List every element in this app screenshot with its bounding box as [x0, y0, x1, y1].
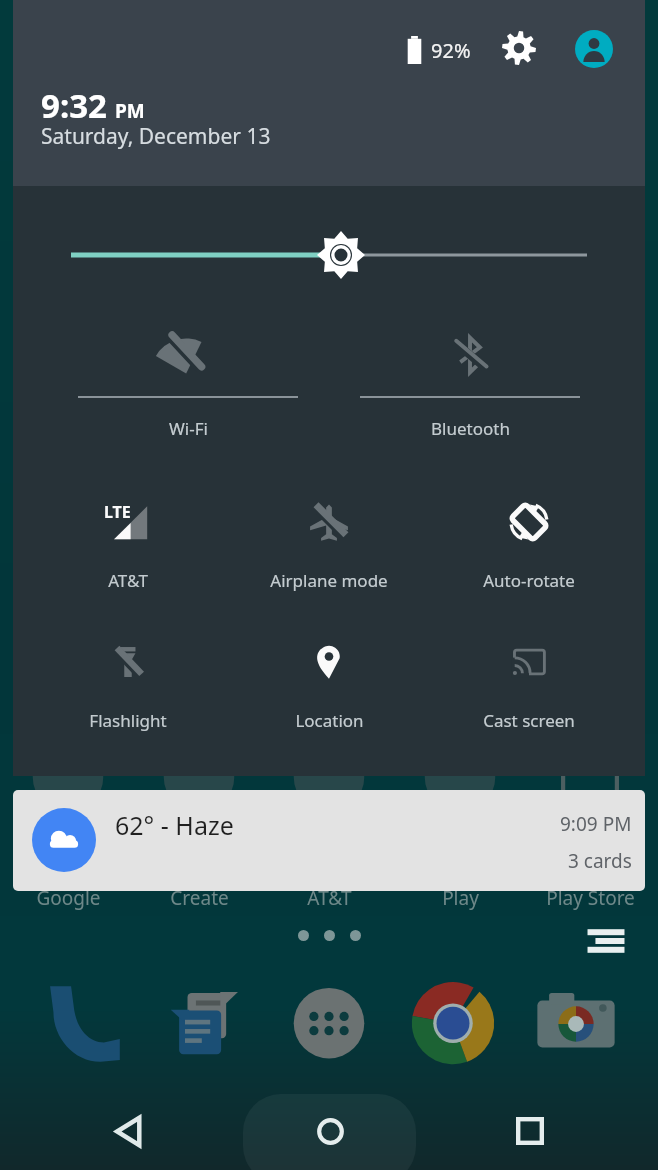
staticText: Airplane mode — [270, 569, 388, 592]
staticText: Cast screen — [483, 709, 575, 732]
staticText: Create — [170, 885, 229, 911]
button[interactable]: Settings — [492, 21, 546, 75]
staticText: Auto-rotate — [483, 569, 575, 592]
button[interactable]: Home — [300, 1101, 360, 1161]
staticText: Google — [36, 885, 101, 911]
button[interactable]: Bluetooth — [328, 318, 612, 449]
staticText: AT&T — [307, 885, 352, 911]
button[interactable]: Back — [98, 1101, 158, 1161]
staticText: 3 cards — [568, 848, 632, 874]
staticText: 9:09 PM — [560, 811, 632, 837]
button[interactable]: Location — [229, 626, 429, 741]
staticText: 92% — [431, 37, 471, 64]
staticText: 9:32 — [41, 83, 107, 128]
button[interactable]: Recent apps — [500, 1101, 560, 1161]
button[interactable]: Wi-Fi — [46, 318, 330, 449]
staticText: PM — [115, 98, 145, 124]
staticText: Saturday, December 13 — [41, 122, 271, 151]
button[interactable]: Cast screen — [429, 626, 629, 741]
button[interactable]: Auto-rotate — [429, 486, 629, 601]
button[interactable]: LTE — [28, 486, 228, 601]
staticText: 62° - Haze — [115, 808, 234, 842]
button[interactable]: User profile — [566, 21, 622, 77]
staticText: Play Store — [546, 885, 635, 911]
staticText: Location — [295, 709, 364, 732]
staticText: LTE — [104, 501, 131, 523]
button[interactable]: Flashlight — [28, 626, 228, 741]
button[interactable]: 62° - Haze — [13, 790, 645, 891]
button[interactable]: Airplane mode — [229, 486, 429, 601]
staticText: Bluetooth — [431, 417, 510, 440]
staticText: Flashlight — [89, 709, 167, 732]
staticText: Wi-Fi — [169, 417, 208, 440]
staticText: AT&T — [108, 569, 148, 592]
staticText: Play — [442, 885, 479, 911]
